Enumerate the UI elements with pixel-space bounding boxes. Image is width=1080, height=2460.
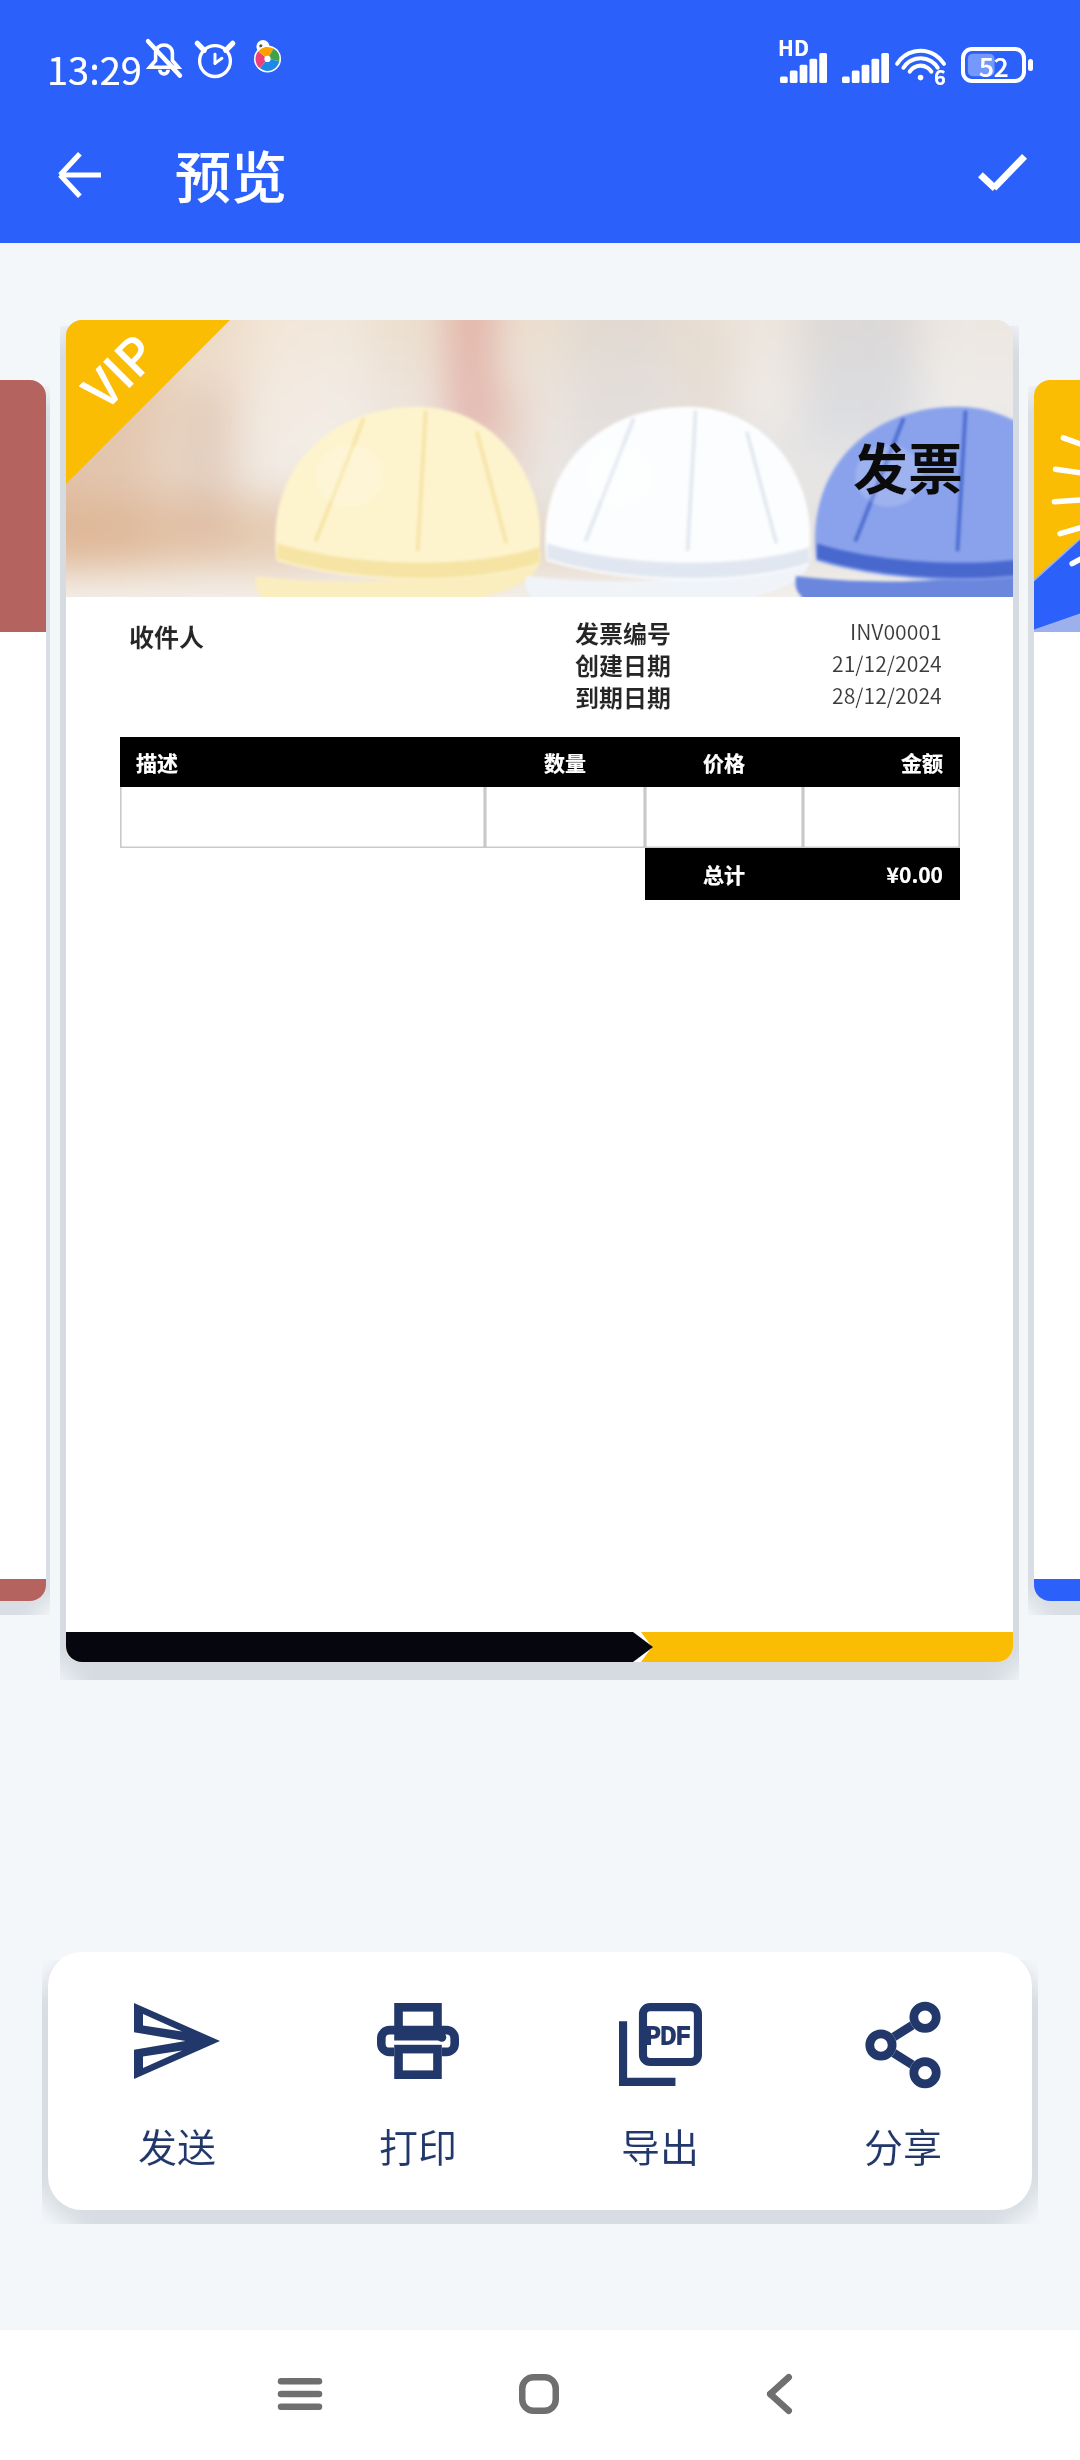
button[interactable]: 打印 [322, 1952, 514, 2210]
staticText: 预览 [175, 133, 287, 214]
staticText: 发送 [138, 2117, 217, 2173]
staticText: 创建日期 [575, 647, 671, 679]
staticText: 分享 [864, 2117, 943, 2173]
staticText: VIP [66, 320, 170, 422]
button[interactable]: Recent apps [240, 2334, 360, 2454]
staticText: INV00001 [850, 616, 942, 646]
staticText: 发票 [853, 425, 964, 505]
staticText: 总计 [645, 859, 803, 889]
staticText: 金额 [803, 747, 943, 777]
staticText: 21/12/2024 [832, 648, 942, 678]
button[interactable]: PDF [564, 1952, 756, 2210]
button[interactable]: Confirm [954, 124, 1050, 220]
staticText: 数量 [485, 747, 645, 777]
button[interactable]: Home [479, 2334, 599, 2454]
staticText: 发票编号 [575, 615, 671, 647]
button[interactable]: 发送 [81, 1952, 273, 2210]
staticText: HD [778, 32, 809, 62]
staticText: 28/12/2024 [832, 680, 942, 710]
staticText: 导出 [621, 2117, 700, 2173]
staticText: 6 [934, 62, 946, 91]
button[interactable]: 分享 [807, 1952, 999, 2210]
staticText: PDF [645, 2016, 691, 2053]
staticText: 收件人 [129, 618, 205, 654]
staticText: 打印 [379, 2117, 458, 2173]
staticText: 到期日期 [575, 679, 671, 711]
staticText: 价格 [645, 747, 803, 777]
button[interactable]: Back [719, 2334, 839, 2454]
staticText: 描述 [136, 747, 485, 777]
button[interactable]: VIP [66, 320, 1013, 1662]
button[interactable]: Back [31, 127, 127, 223]
staticText: ¥0.00 [803, 859, 943, 889]
staticText: 13:29 [47, 41, 142, 96]
staticText: 52 [979, 47, 1009, 83]
